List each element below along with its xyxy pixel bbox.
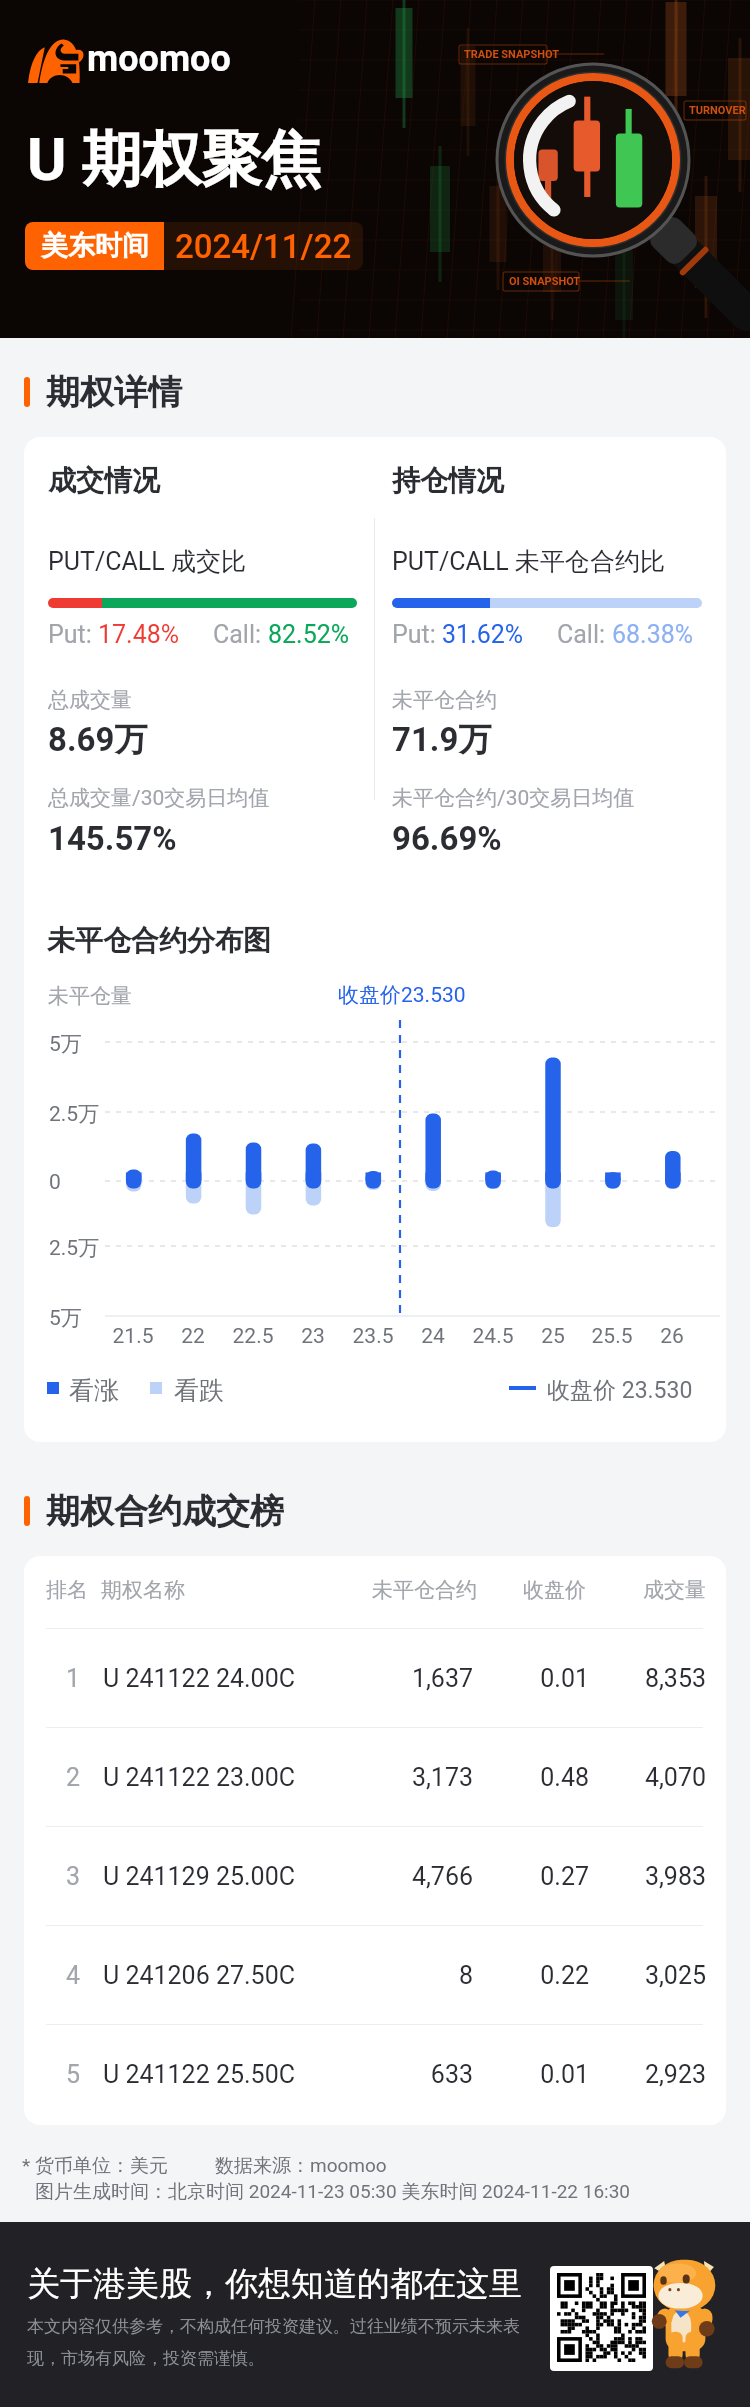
staticText: 633 — [353, 2060, 473, 2089]
staticText: 4,070 — [586, 1763, 706, 1792]
staticText: 0 — [49, 1170, 61, 1195]
staticText: 美东时间 — [41, 229, 149, 263]
staticText: U 241206 27.50C — [103, 1961, 295, 1990]
staticText: U 241129 25.00C — [103, 1862, 295, 1891]
staticText: 关于港美股，你想知道的都在这里 — [27, 2263, 522, 2305]
staticText: 1 — [58, 1664, 88, 1693]
staticText: 82.52% — [268, 620, 350, 649]
staticText: 排名 — [46, 1577, 88, 1603]
staticText: 68.38% — [612, 620, 694, 649]
staticText: 71.9万 — [392, 719, 492, 761]
staticText: 总成交量/30交易日均值 — [48, 785, 270, 811]
staticText: 3,173 — [353, 1763, 473, 1792]
staticText: 未平仓量 — [48, 983, 132, 1009]
staticText: 4,766 — [353, 1862, 473, 1891]
other: QR code — [550, 2266, 653, 2371]
staticText: 成交情况 — [48, 463, 160, 498]
staticText: 5万 — [49, 1031, 82, 1057]
staticText: 看跌 — [174, 1375, 224, 1406]
staticText: U 241122 24.00C — [103, 1664, 295, 1693]
staticText: 26 — [632, 1324, 712, 1349]
staticText: 5万 — [49, 1305, 82, 1331]
staticText: moomoo — [87, 38, 231, 80]
staticText: 2 — [58, 1763, 88, 1792]
button[interactable] — [24, 1628, 726, 1727]
staticText: 0.01 — [469, 1664, 589, 1693]
staticText: 17.48% — [98, 620, 180, 649]
staticText: 22.5 — [213, 1324, 293, 1349]
staticText: 96.69% — [392, 819, 502, 858]
staticText: U 241122 25.50C — [103, 2060, 295, 2089]
staticText: 未平仓合约 — [392, 687, 497, 713]
staticText: 24 — [393, 1324, 473, 1349]
staticText: 8 — [353, 1961, 473, 1990]
staticText: 3,025 — [586, 1961, 706, 1990]
button[interactable] — [24, 2024, 726, 2123]
staticText: 8,353 — [586, 1664, 706, 1693]
staticText: 0.27 — [469, 1862, 589, 1891]
staticText: 收盘价23.530 — [338, 982, 466, 1008]
staticText: OI SNAPSHOT — [509, 275, 581, 288]
staticText: TURNOVER — [689, 104, 746, 117]
staticText: TRADE SNAPSHOT — [464, 48, 559, 61]
button[interactable] — [24, 1925, 726, 2024]
button[interactable]: 美东时间 — [25, 222, 363, 270]
staticText: 8.69万 — [48, 719, 148, 761]
staticText: 持仓情况 — [392, 463, 504, 498]
staticText: 25 — [513, 1324, 593, 1349]
staticText: 145.57% — [48, 819, 177, 858]
staticText: * 货币单位：美元 — [22, 2154, 168, 2178]
staticText: 4 — [58, 1961, 88, 1990]
staticText: 本文内容仅供参考，不构成任何投资建议。过往业绩不预示未来表 现，市场有风险，投资… — [27, 2316, 520, 2369]
staticText: 图片生成时间：北京时间 2024-11-23 05:30 美东时间 2024-1… — [35, 2180, 631, 2204]
staticText: 数据来源：moomoo — [215, 2154, 387, 2178]
staticText: 2,923 — [586, 2060, 706, 2089]
staticText: 24.5 — [453, 1324, 533, 1349]
staticText: 收盘价 23.530 — [547, 1376, 693, 1405]
staticText: Call: — [557, 620, 612, 649]
staticText: Put: — [48, 620, 98, 649]
staticText: PUT/CALL 未平仓合约比 — [392, 546, 665, 577]
staticText: 31.62% — [442, 620, 524, 649]
staticText: Call: — [213, 620, 268, 649]
staticText: 未平仓合约/30交易日均值 — [392, 785, 635, 811]
staticText: 期权详情 — [46, 371, 182, 414]
staticText: 看涨 — [69, 1375, 119, 1406]
staticText: PUT/CALL 成交比 — [48, 546, 246, 577]
staticText: 成交量 — [586, 1577, 706, 1603]
staticText: Put: — [392, 620, 442, 649]
staticText: 0.22 — [469, 1961, 589, 1990]
staticText: 未平仓合约 — [357, 1577, 477, 1603]
staticText: 0.48 — [469, 1763, 589, 1792]
staticText: 总成交量 — [48, 687, 132, 713]
staticText: 1,637 — [353, 1664, 473, 1693]
staticText: 3 — [58, 1862, 88, 1891]
staticText: 期权合约成交榜 — [46, 1490, 284, 1533]
button[interactable] — [24, 1727, 726, 1826]
staticText: 5 — [58, 2060, 88, 2089]
staticText: 21.5 — [93, 1324, 173, 1349]
staticText: 25.5 — [572, 1324, 652, 1349]
staticText: 23.5 — [333, 1324, 413, 1349]
staticText: 期权名称 — [101, 1577, 185, 1603]
staticText: 0.01 — [469, 2060, 589, 2089]
staticText: 2.5万 — [49, 1235, 100, 1261]
staticText: U 期权聚焦 — [27, 122, 322, 198]
staticText: 22 — [153, 1324, 233, 1349]
button[interactable] — [24, 1826, 726, 1925]
staticText: 收盘价 — [466, 1577, 586, 1603]
staticText: 3,983 — [586, 1862, 706, 1891]
staticText: 23 — [273, 1324, 353, 1349]
staticText: U 241122 23.00C — [103, 1763, 295, 1792]
staticText: 未平仓合约分布图 — [47, 923, 271, 958]
staticText: 2.5万 — [49, 1101, 100, 1127]
staticText: 2024/11/22 — [175, 227, 352, 266]
